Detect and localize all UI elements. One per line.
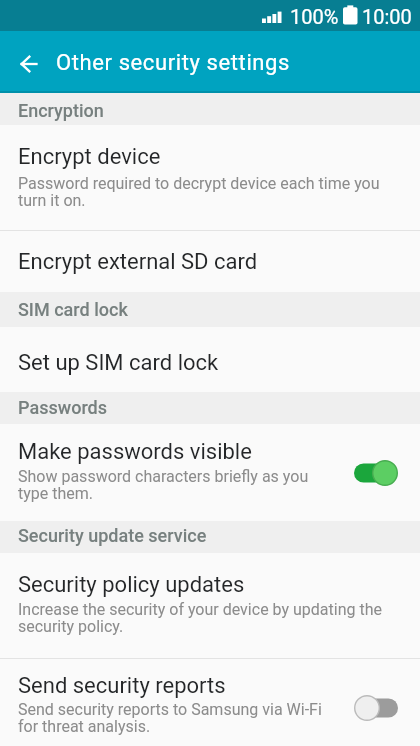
staticText: Password required to decrypt device each…	[18, 174, 398, 210]
button[interactable]	[0, 231, 420, 292]
staticText: Encrypt device	[18, 144, 161, 170]
staticText: Increase the security of your device by …	[18, 600, 404, 636]
staticText: Other security settings	[56, 50, 290, 76]
staticText: Send security reports to Samsung via Wi-…	[18, 700, 338, 736]
button[interactable]	[0, 326, 420, 392]
button[interactable]	[0, 424, 420, 521]
staticText: 10:00	[362, 5, 412, 28]
button[interactable]	[0, 125, 420, 230]
button[interactable]	[6, 48, 52, 82]
button[interactable]	[354, 695, 398, 721]
staticText: 100%	[290, 5, 339, 28]
staticText: Encrypt external SD card	[18, 249, 258, 275]
staticText: Encryption	[18, 100, 104, 121]
staticText: Set up SIM card lock	[18, 350, 219, 376]
button[interactable]	[0, 553, 420, 658]
staticText: Passwords	[18, 397, 108, 418]
staticText: Security update service	[18, 525, 207, 546]
staticText: Send security reports	[18, 673, 226, 699]
button[interactable]	[354, 460, 398, 486]
staticText: SIM card lock	[18, 299, 128, 320]
staticText: Security policy updates	[18, 572, 245, 598]
button[interactable]	[0, 659, 420, 746]
staticText: Make passwords visible	[18, 439, 252, 465]
staticText: Show password characters briefly as you …	[18, 467, 330, 503]
